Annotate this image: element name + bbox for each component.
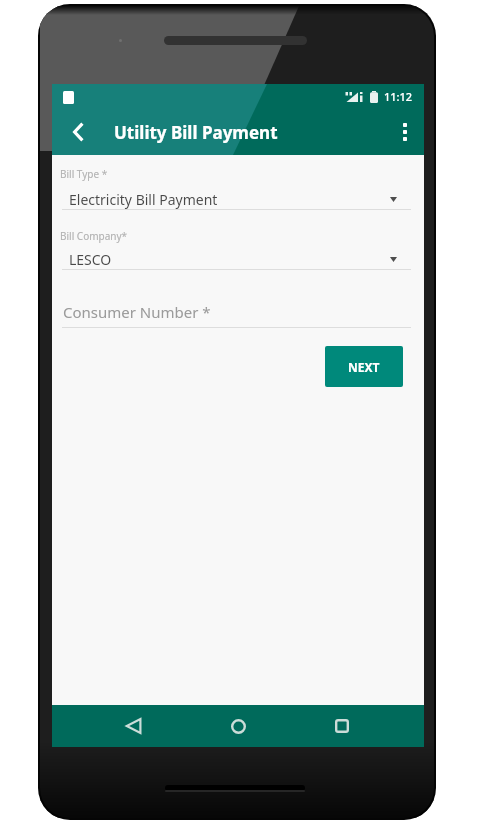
button[interactable]: Open bill company list xyxy=(384,251,403,268)
staticText: Electricity Bill Payment xyxy=(69,190,218,209)
button[interactable]: Consumer Number * xyxy=(62,299,411,327)
button[interactable]: Recent apps xyxy=(323,705,361,747)
staticText: LESCO xyxy=(69,250,112,269)
button[interactable]: NEXT xyxy=(325,346,403,387)
staticText: Bill Company* xyxy=(60,229,128,243)
button[interactable]: Back xyxy=(114,705,152,747)
button[interactable]: Home xyxy=(219,705,257,747)
staticText: Bill Type * xyxy=(60,167,108,181)
button[interactable]: More options xyxy=(387,114,423,150)
button[interactable]: Back xyxy=(60,114,96,150)
button[interactable]: Open bill type list xyxy=(384,191,403,208)
staticText: Consumer Number * xyxy=(63,302,211,322)
staticText: Utility Bill Payment xyxy=(114,121,278,144)
staticText: 11:12 xyxy=(384,89,413,104)
staticText: NEXT xyxy=(348,359,380,375)
